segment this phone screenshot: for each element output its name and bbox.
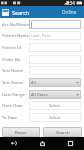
staticText: Date Range	[2, 92, 25, 98]
button[interactable]: Online	[61, 8, 78, 16]
button[interactable]: Select	[29, 113, 81, 122]
button[interactable]: Back	[0, 137, 28, 150]
staticText: Last , First	[31, 33, 51, 39]
staticText: All	[31, 80, 36, 86]
staticText: Reset	[15, 129, 27, 135]
staticText: Select	[49, 103, 61, 109]
staticText: Order No	[2, 57, 21, 63]
staticText: Search	[12, 9, 30, 16]
staticText: All Dates	[31, 92, 48, 98]
button[interactable]: Last , First	[29, 31, 81, 40]
staticText: Test Status	[2, 80, 24, 86]
button[interactable]: Recent apps	[56, 137, 84, 150]
button[interactable]: App logo	[1, 7, 10, 18]
button[interactable]: All Dates	[29, 90, 81, 99]
staticText: Acc No/Name	[2, 22, 29, 28]
staticText: Patient Name	[2, 33, 29, 39]
button[interactable]: All	[29, 78, 81, 87]
button[interactable]	[29, 55, 81, 64]
button[interactable]: Reset	[2, 127, 40, 137]
button[interactable]: Home	[28, 137, 56, 150]
staticText: To Date	[2, 115, 17, 121]
button[interactable]: Select	[29, 101, 81, 110]
staticText: Select	[49, 115, 61, 121]
button[interactable]	[29, 43, 81, 52]
staticText: 7:34	[66, 0, 75, 6]
staticText: From Date	[2, 103, 23, 109]
button[interactable]	[29, 66, 81, 75]
staticText: Online	[62, 9, 77, 15]
staticText: Search	[56, 129, 70, 135]
button[interactable]: Search	[43, 127, 82, 137]
staticText: Patient Id	[2, 45, 22, 51]
button[interactable]	[29, 20, 81, 29]
staticText: Test Name	[2, 68, 23, 74]
